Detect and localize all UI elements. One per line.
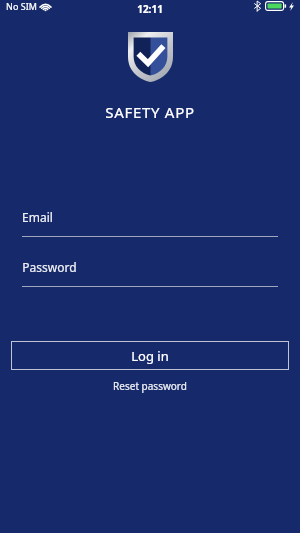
other: Wi-Fi [40,2,51,11]
staticText: Reset password [113,379,187,393]
button[interactable]: Log in [11,341,289,370]
button[interactable]: Password [0,259,300,287]
other: Safety App shield logo [128,32,173,82]
button[interactable]: Email [0,209,300,237]
staticText: No SIM [6,0,37,12]
staticText: Password [22,259,77,275]
other: Charging [289,2,294,11]
staticText: Email [22,209,53,225]
staticText: Log in [131,347,169,365]
staticText: 12:11 [137,2,163,16]
other: Battery full [265,1,287,11]
staticText: SAFETY APP [105,102,195,122]
other: Bluetooth [254,1,261,11]
button[interactable]: Reset password [101,377,199,395]
